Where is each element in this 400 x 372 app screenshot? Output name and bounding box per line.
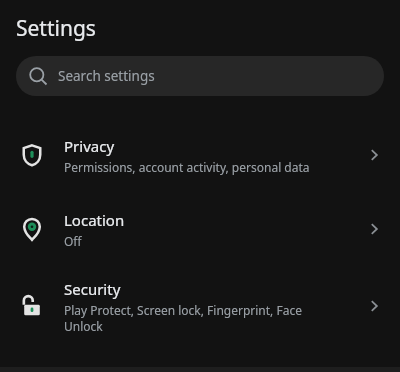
staticText: Off	[64, 233, 82, 249]
staticText: Search settings	[58, 67, 155, 85]
button[interactable]: Search settings	[16, 56, 384, 96]
staticText: Permissions, account activity, personal …	[64, 159, 310, 175]
staticText: Security	[64, 279, 121, 299]
other: Open Location	[356, 211, 392, 247]
other: Open Security	[356, 288, 392, 324]
staticText: Location	[64, 210, 125, 230]
staticText: Privacy	[64, 136, 115, 156]
button[interactable]: Privacy	[0, 118, 400, 192]
staticText: Play Protect, Screen lock, Fingerprint, …	[64, 302, 332, 334]
button[interactable]: Location	[0, 192, 400, 266]
other: Open Privacy	[356, 137, 392, 173]
button[interactable]: Security	[0, 266, 400, 346]
staticText: Settings	[16, 14, 96, 43]
